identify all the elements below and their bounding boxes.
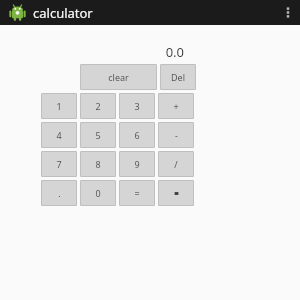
button[interactable]: 3 <box>119 93 155 119</box>
button[interactable]: 2 <box>80 93 116 119</box>
staticText: 1 <box>56 100 62 112</box>
staticText: 8 <box>95 158 101 170</box>
staticText: 9 <box>134 158 140 170</box>
button[interactable]: 9 <box>119 151 155 177</box>
staticText: 0 <box>95 187 101 199</box>
staticText: 4 <box>56 129 62 141</box>
button[interactable]: Minus <box>158 122 194 148</box>
button[interactable]: Decimal point <box>41 180 77 206</box>
staticText: + <box>173 100 179 112</box>
button[interactable]: Plus <box>158 93 194 119</box>
button[interactable]: Divide <box>158 151 194 177</box>
staticText: 3 <box>134 100 140 112</box>
button[interactable]: clear <box>80 64 157 90</box>
button[interactable]: 1 <box>41 93 77 119</box>
staticText: 0.0 <box>165 43 184 61</box>
button[interactable]: 0 <box>80 180 116 206</box>
staticText: Del <box>171 71 185 83</box>
staticText: - <box>175 129 178 141</box>
button[interactable]: Multiply <box>158 180 194 206</box>
staticText: 6 <box>134 129 140 141</box>
staticText: clear <box>108 71 129 83</box>
staticText: = <box>134 187 140 199</box>
button[interactable]: More options <box>282 0 294 25</box>
button[interactable]: 7 <box>41 151 77 177</box>
staticText: 5 <box>95 129 101 141</box>
staticText: . <box>58 187 61 199</box>
button[interactable]: 5 <box>80 122 116 148</box>
button[interactable]: 4 <box>41 122 77 148</box>
staticText: / <box>174 158 178 170</box>
staticText: calculator <box>33 4 93 22</box>
button[interactable]: 6 <box>119 122 155 148</box>
staticText: 7 <box>56 158 62 170</box>
button[interactable]: Del <box>160 64 196 90</box>
staticText: 2 <box>95 100 101 112</box>
button[interactable]: 8 <box>80 151 116 177</box>
button[interactable]: Equals <box>119 180 155 206</box>
